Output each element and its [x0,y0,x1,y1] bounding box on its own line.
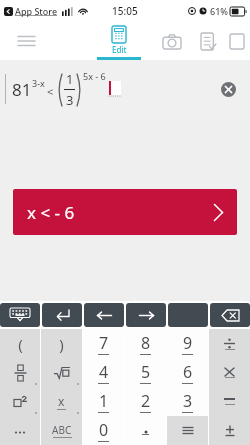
staticText: 61% [210,5,228,17]
button[interactable]: 4 [83,358,124,387]
button[interactable] [209,358,250,387]
staticText: ) [59,334,64,354]
staticText: 7 [99,332,109,354]
button[interactable]: Clear [216,77,240,101]
button[interactable]: 5 [125,358,166,387]
button[interactable] [209,387,250,416]
staticText: 1 [66,70,74,88]
staticText: ( [18,334,23,354]
button[interactable]: ( [0,329,40,358]
button[interactable] [0,387,40,416]
staticText: 3 [183,390,193,412]
staticText: Edit [112,44,127,55]
button[interactable]: 9 [167,329,208,358]
button[interactable] [0,358,40,387]
button[interactable] [167,416,208,445]
button[interactable]: ) [41,329,82,358]
button[interactable]: Enter [42,303,82,327]
staticText: 3 [66,91,74,109]
staticText: < [47,84,54,99]
staticText: 8 [141,332,151,354]
staticText: x [58,393,65,409]
button[interactable]: Backspace [210,303,250,327]
staticText: 2 [141,390,151,412]
button[interactable] [0,416,40,445]
button[interactable]: Camera [154,23,190,59]
staticText: 3-x [32,77,45,89]
button[interactable]: Menu [10,25,42,57]
button[interactable]: Hide keyboard [0,303,40,327]
staticText: 9 [183,332,193,354]
button[interactable] [209,329,250,358]
staticText: App Store [15,5,58,17]
button[interactable] [125,416,166,445]
staticText: 0 [99,419,109,441]
button[interactable] [209,416,250,445]
button[interactable]: 0 [83,416,124,445]
button[interactable]: ABC [41,416,82,445]
button[interactable]: More [226,30,248,52]
button[interactable]: 8 [125,329,166,358]
button[interactable]: 2 [125,387,166,416]
staticText: ABC [52,423,72,437]
staticText: x < - 6 [27,201,75,224]
staticText: 1 [99,390,109,412]
button[interactable]: Space [168,303,208,327]
staticText: 5x - 6 [83,70,106,82]
staticText: 5 [141,361,151,383]
staticText: 6 [183,361,193,383]
button[interactable]: Right [126,303,166,327]
button[interactable]: x [41,387,82,416]
button[interactable]: 6 [167,358,208,387]
staticText: 15:05 [112,4,138,18]
button[interactable]: Edit [93,22,145,60]
button[interactable] [41,358,82,387]
button[interactable]: 3 [167,387,208,416]
staticText: 81 [12,78,32,101]
button[interactable]: x < - 6 [13,189,237,235]
staticText: 4 [99,361,109,383]
button[interactable]: Left [84,303,124,327]
button[interactable]: 1 [83,387,124,416]
button[interactable]: Notes [190,23,226,59]
button[interactable]: 7 [83,329,124,358]
